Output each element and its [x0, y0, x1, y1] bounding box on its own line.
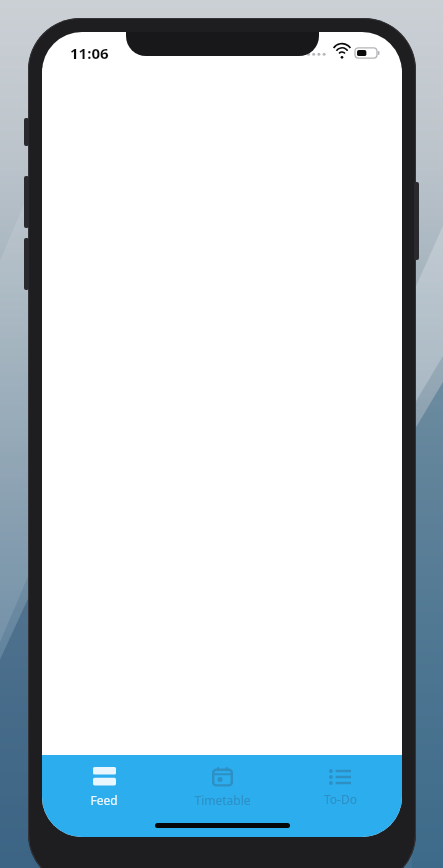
- staticText: Timetable: [194, 792, 251, 808]
- button[interactable]: To-Do: [284, 762, 396, 807]
- staticText: 11:06: [70, 43, 109, 63]
- staticText: To-Do: [324, 791, 357, 807]
- button[interactable]: Feed: [48, 761, 160, 808]
- other: Timetable: [212, 766, 233, 787]
- button[interactable]: Timetable: [166, 760, 278, 808]
- staticText: Feed: [90, 792, 118, 808]
- other: To-Do: [329, 768, 351, 786]
- other: Feed: [93, 767, 116, 787]
